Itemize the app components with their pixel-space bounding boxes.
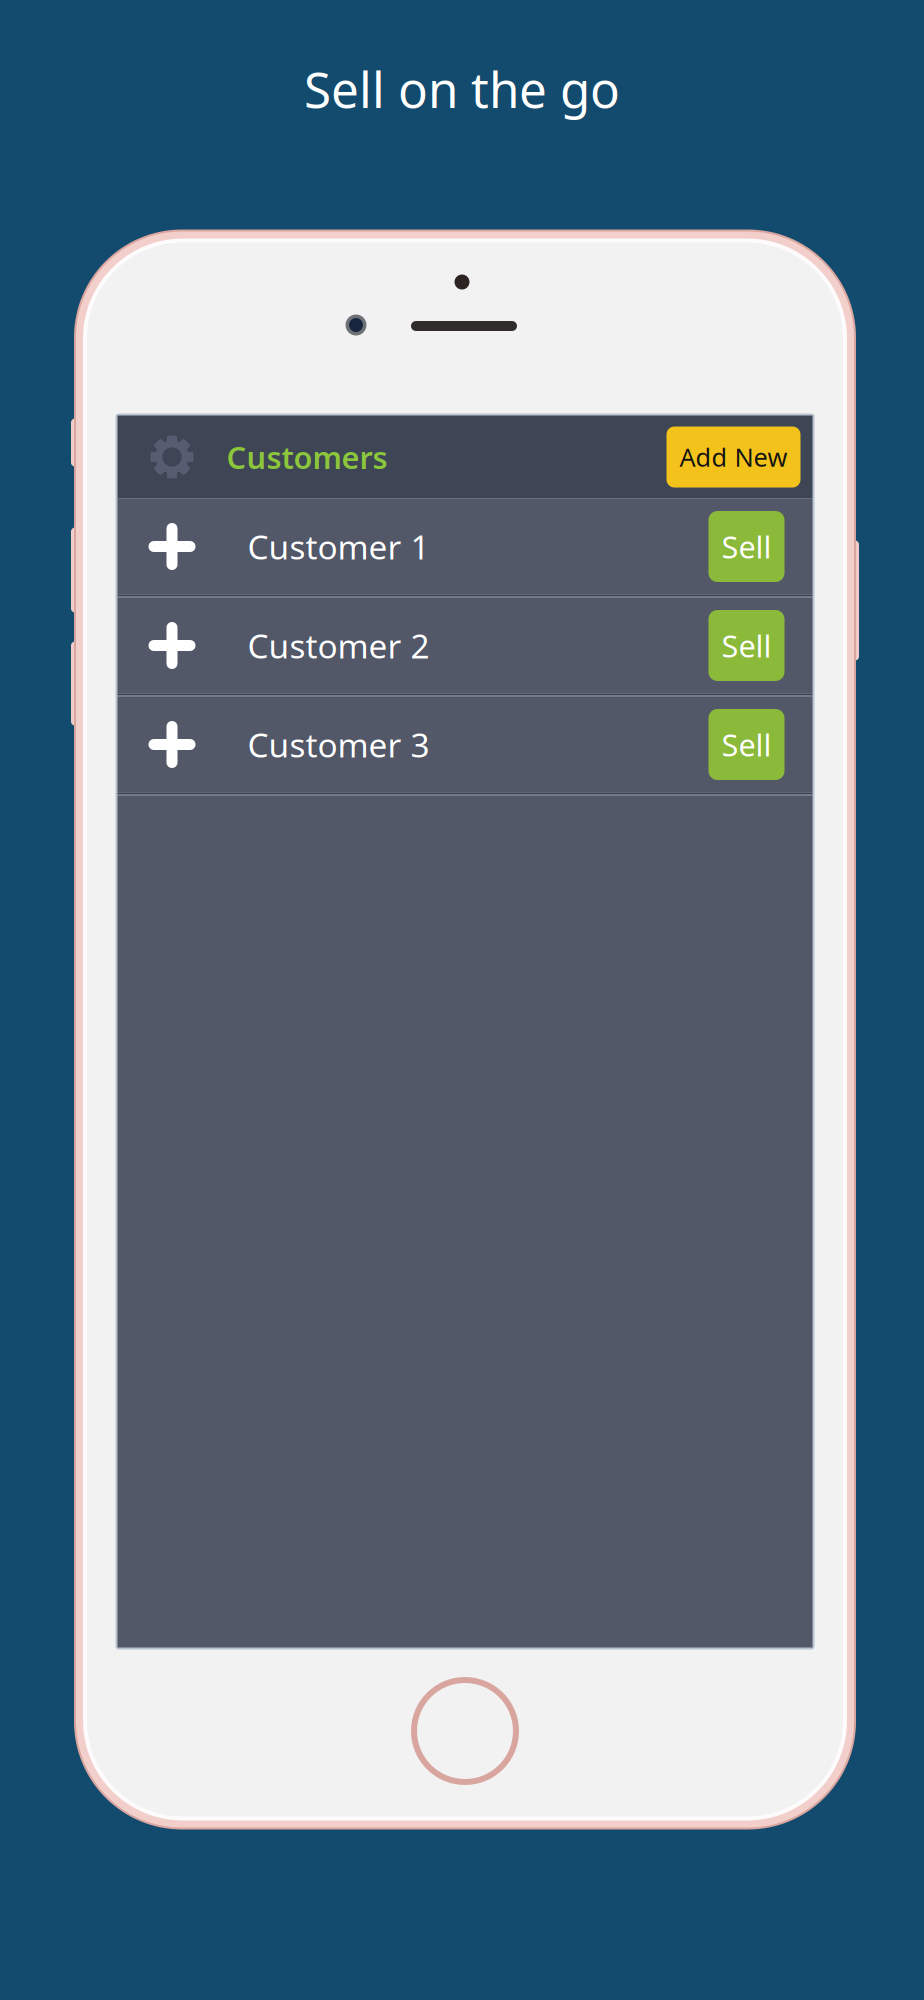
staticText: Add New (679, 440, 787, 474)
button[interactable]: Customer 3 (117, 696, 812, 792)
button[interactable]: Customer 1 (117, 498, 812, 594)
staticText: Customers (226, 437, 387, 477)
staticText: Customer 3 (247, 722, 429, 767)
staticText: Customer 1 (247, 524, 429, 569)
staticText: Sell (721, 526, 771, 567)
staticText: Sell (721, 724, 771, 765)
button[interactable]: Add New (666, 426, 800, 487)
staticText: Customer 2 (247, 623, 429, 668)
button[interactable]: Customer 2 (117, 597, 812, 693)
staticText: Sell on the go (304, 56, 620, 121)
staticText: Sell (721, 625, 771, 666)
button[interactable]: Settings (117, 415, 226, 498)
